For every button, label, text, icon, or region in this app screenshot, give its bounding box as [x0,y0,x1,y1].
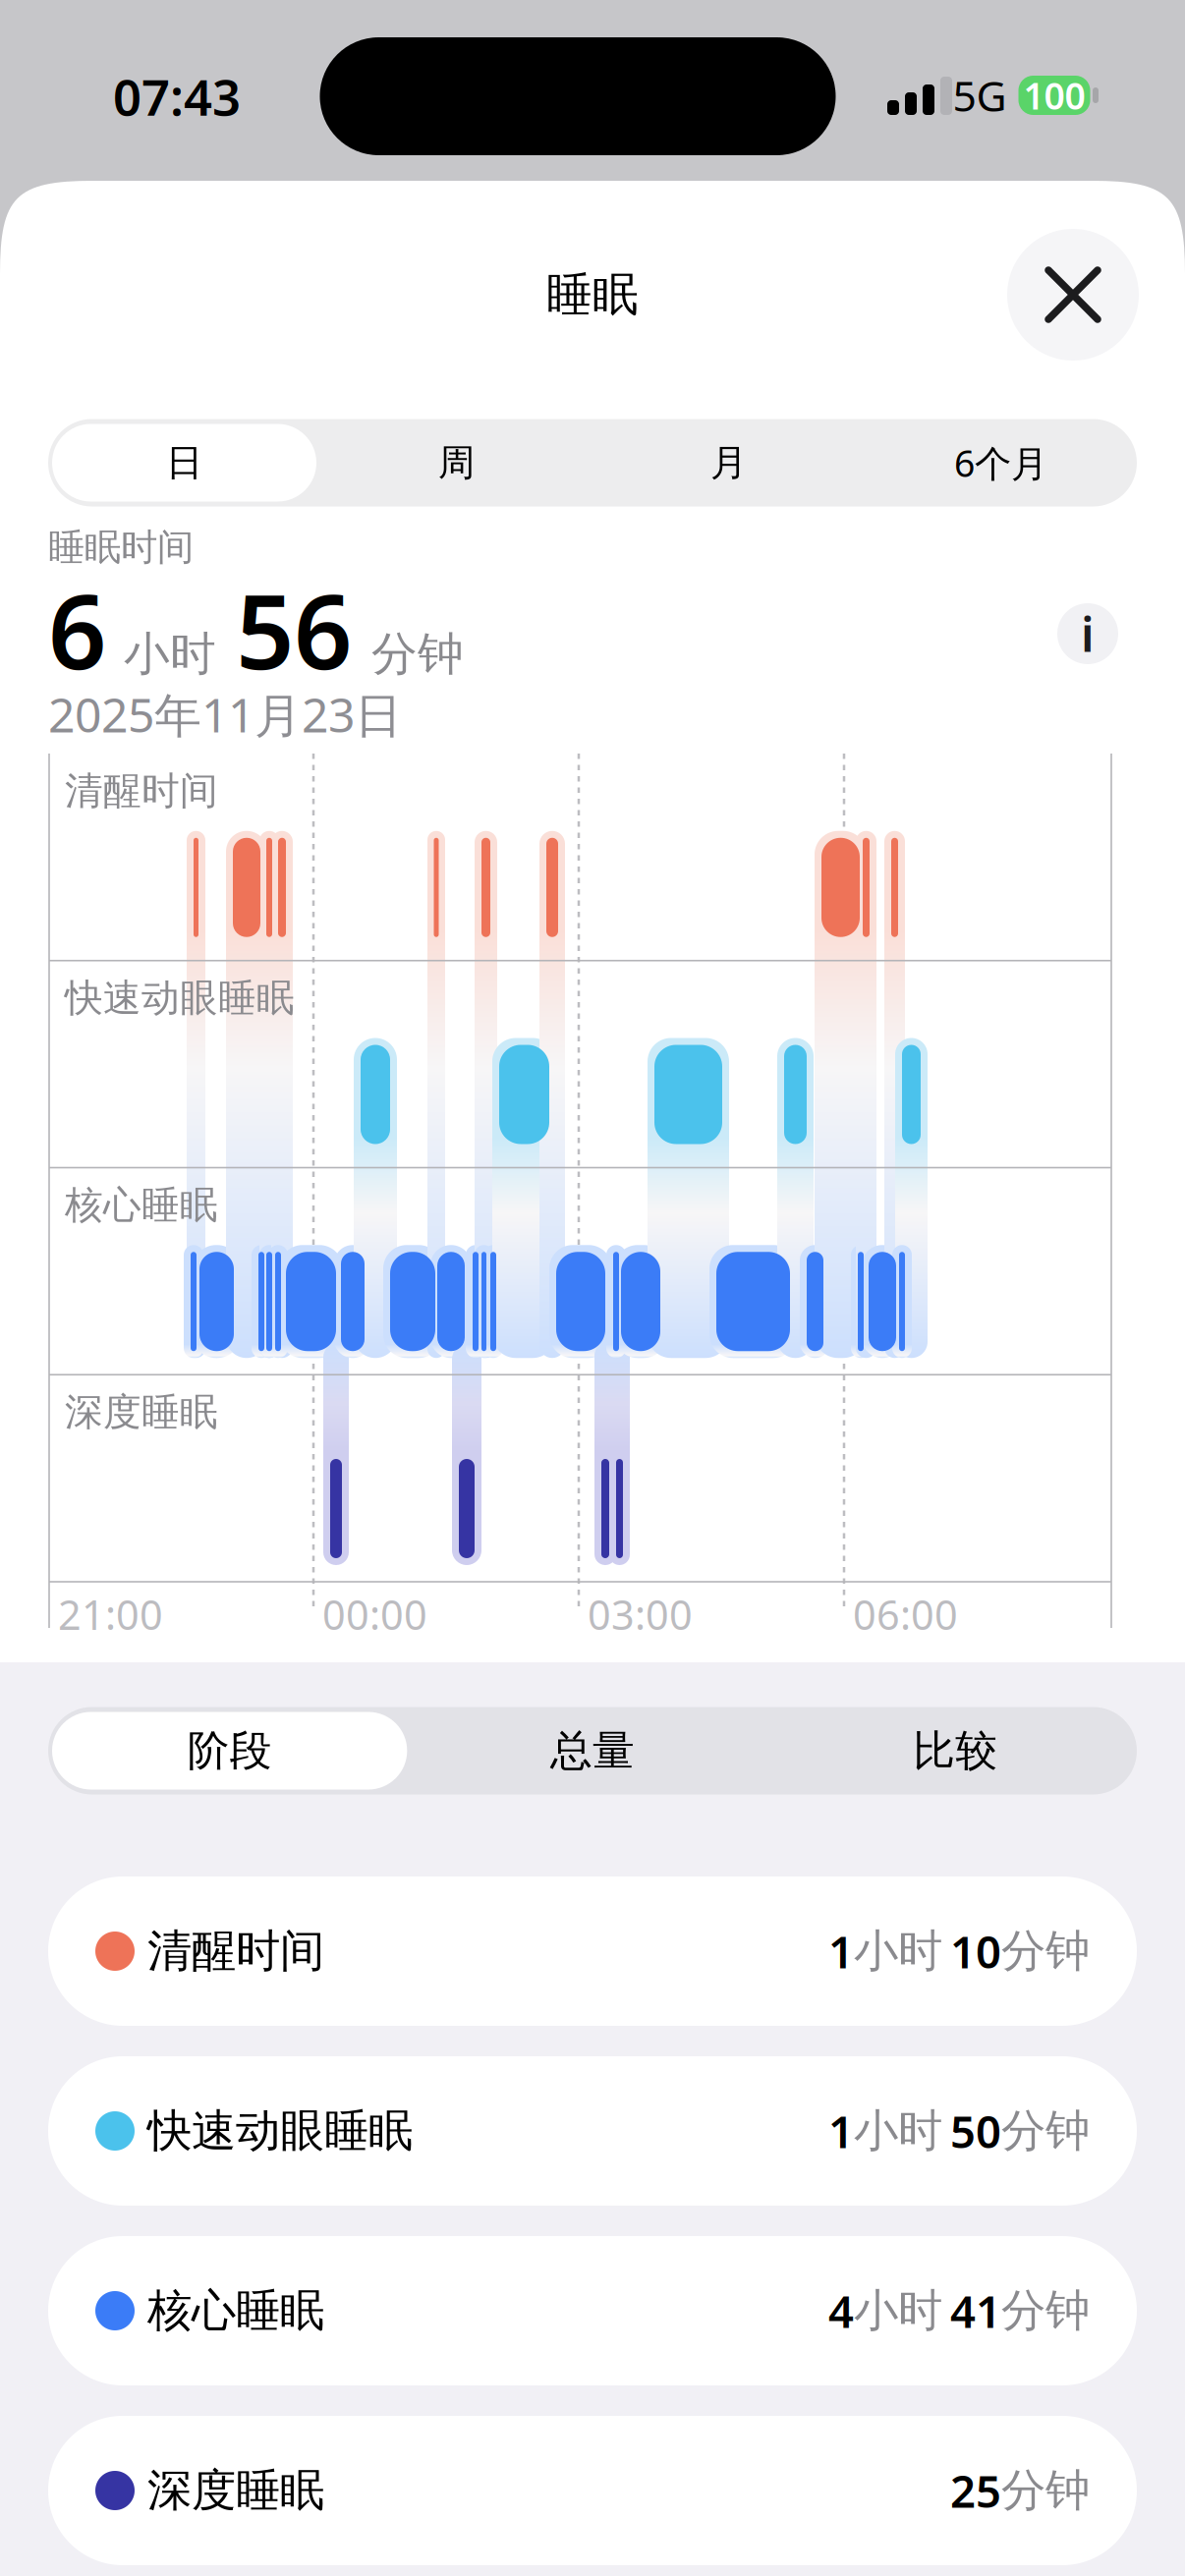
button[interactable]: 阶段 [48,1707,411,1794]
button[interactable]: 核心睡眠 [48,2236,1137,2385]
staticText: 4 [828,2281,854,2340]
staticText: 07:43 [113,63,241,129]
staticText: 21:00 [58,1587,163,1641]
button[interactable]: 清醒时间 [48,1876,1137,2026]
staticText: i [1081,602,1095,665]
staticText: 睡眠时间 [48,525,194,570]
button[interactable]: Info [1057,603,1118,664]
staticText: 周 [438,440,475,485]
staticText: 总量 [550,1725,635,1776]
staticText: 06:00 [853,1587,958,1641]
staticText: 核心睡眠 [147,2283,324,2338]
staticText: 分钟 [1001,1924,1090,1979]
staticText: 1 [828,1922,854,1981]
staticText: 5G [953,67,1007,123]
button[interactable]: 总量 [411,1707,774,1794]
button[interactable]: 快速动眼睡眠 [48,2056,1137,2206]
staticText: 2025年11月23日 [48,683,402,745]
staticText: 分钟 [1001,2283,1090,2338]
staticText: 小时 [854,2104,942,2158]
staticText: 深度睡眠 [147,2463,324,2518]
staticText: 小时 [124,626,216,682]
staticText: 6个月 [954,438,1047,487]
button[interactable]: Close [1007,229,1139,361]
staticText: 快速动眼睡眠 [147,2104,413,2158]
staticText: 分钟 [1001,2104,1090,2158]
staticText: 快速动眼睡眠 [65,975,295,1021]
staticText: 小时 [854,1924,942,1979]
staticText: 小时 [854,2283,942,2338]
staticText: 50 [950,2101,1001,2161]
staticText: 日 [166,440,202,485]
staticText: 分钟 [1001,2463,1090,2518]
staticText: 25 [950,2461,1001,2520]
staticText: 核心睡眠 [65,1182,218,1228]
button[interactable]: 比较 [774,1707,1137,1794]
staticText: 睡眠 [546,267,639,323]
staticText: 比较 [913,1725,998,1776]
staticText: 月 [710,440,747,485]
staticText: 00:00 [322,1587,427,1641]
button[interactable]: 深度睡眠 [48,2416,1137,2565]
staticText: 56 [236,562,352,698]
button[interactable]: 月 [592,419,865,506]
staticText: 阶段 [187,1725,272,1776]
button[interactable]: 日 [48,419,320,506]
staticText: 清醒时间 [147,1924,324,1979]
button[interactable]: 周 [320,419,592,506]
staticText: 1 [828,2101,854,2161]
staticText: 10 [950,1922,1001,1981]
staticText: 6 [48,562,106,698]
staticText: 41 [950,2281,1001,2340]
staticText: 分钟 [371,626,464,682]
button[interactable]: 6个月 [865,419,1137,506]
staticText: 03:00 [588,1587,693,1641]
staticText: 100 [1023,71,1085,120]
staticText: 深度睡眠 [65,1389,218,1435]
staticText: 清醒时间 [65,768,218,814]
